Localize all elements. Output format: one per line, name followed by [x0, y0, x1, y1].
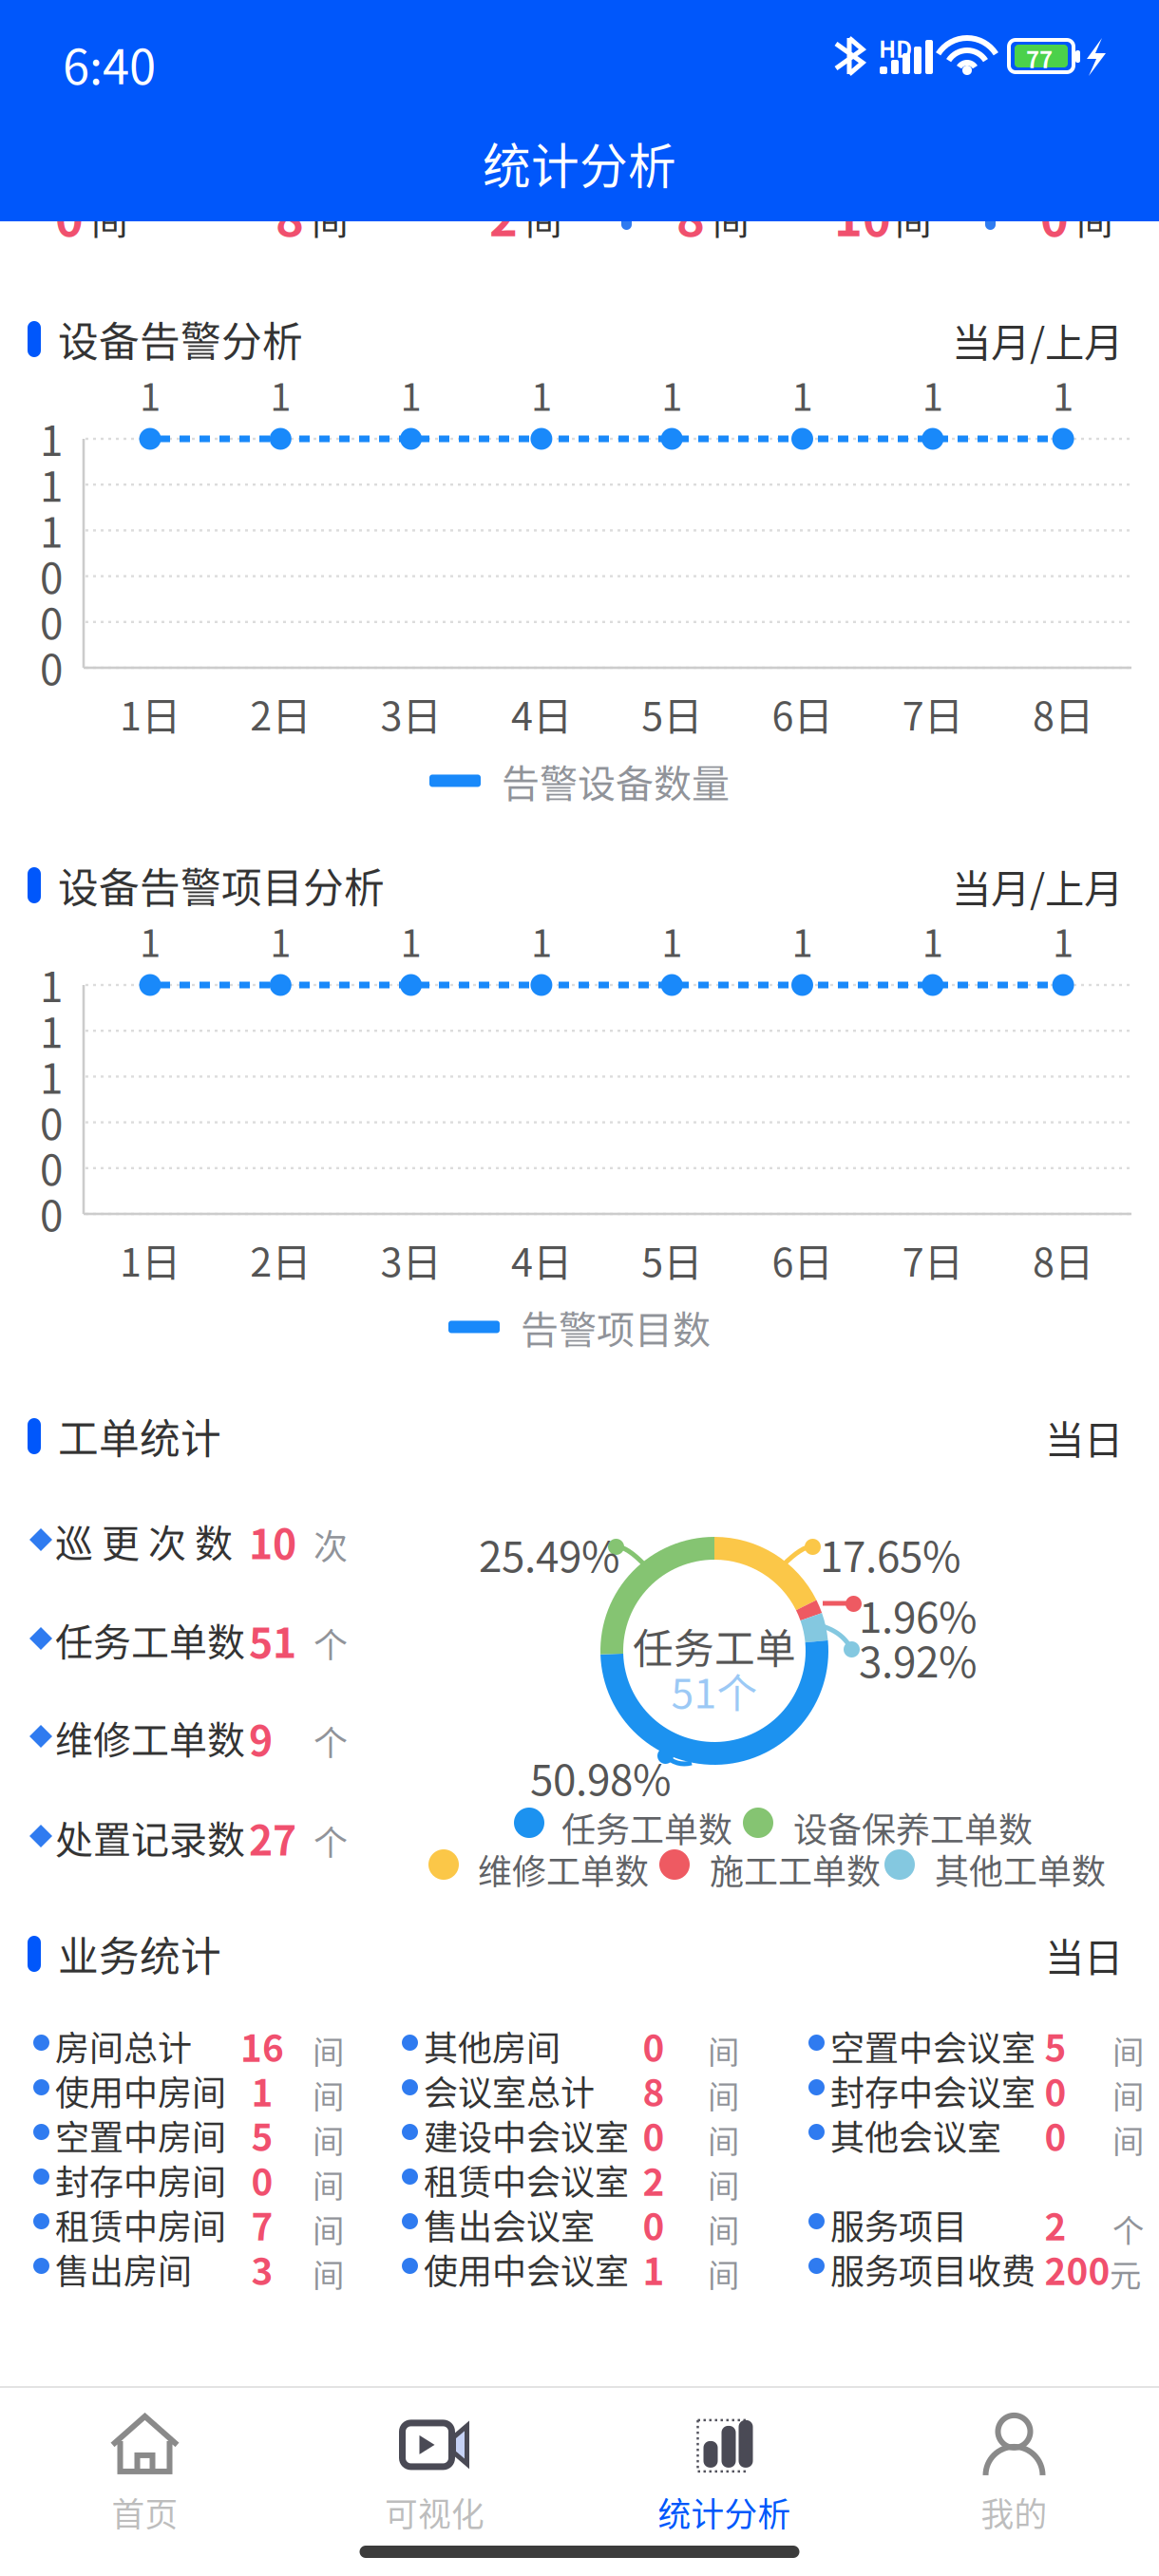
staticText: 间: [712, 192, 750, 245]
staticText: 8日: [1033, 685, 1094, 742]
staticText: 工单统计: [58, 1407, 221, 1465]
staticText: 6日: [772, 685, 833, 742]
staticText: 间: [312, 192, 349, 245]
staticText: 任务工单数: [561, 1803, 732, 1852]
staticText: 服务项目: [830, 2200, 967, 2249]
staticText: 2: [1045, 2198, 1066, 2251]
staticText: 0: [643, 2198, 665, 2251]
staticText: 告警设备数量: [502, 753, 730, 808]
staticText: 0: [643, 2109, 665, 2162]
staticText: 10: [834, 180, 891, 250]
staticText: 5: [251, 2109, 273, 2162]
staticText: 1: [40, 1045, 63, 1106]
staticText: 会议室总计: [424, 2066, 595, 2115]
staticText: 1: [40, 407, 63, 468]
staticText: 0: [643, 2019, 665, 2073]
staticText: 设备保养工单数: [793, 1803, 1033, 1852]
staticText: 间: [708, 2116, 739, 2162]
staticText: 3日: [381, 1231, 441, 1288]
staticText: 售出会议室: [424, 2200, 595, 2249]
staticText: 2日: [250, 685, 311, 742]
staticText: 间: [895, 192, 932, 245]
staticText: 间: [1112, 2116, 1144, 2162]
staticText: 当日: [1045, 1409, 1123, 1466]
staticText: 2日: [250, 1231, 311, 1288]
staticText: 任务工单数: [55, 1612, 245, 1667]
staticText: 10: [249, 1512, 296, 1571]
staticText: 首页: [112, 2489, 178, 2536]
staticText: 4日: [511, 1231, 572, 1288]
staticText: 间: [313, 2250, 344, 2296]
staticText: 1: [40, 999, 63, 1060]
staticText: 17.65%: [820, 1524, 961, 1584]
staticText: 6日: [772, 1231, 833, 1288]
staticText: 1: [1053, 367, 1074, 422]
staticText: 封存中会议室: [830, 2066, 1035, 2115]
staticText: 0: [251, 2153, 273, 2207]
button[interactable]: 首页: [0, 2405, 290, 2548]
staticText: 6:40: [63, 28, 156, 98]
staticText: 0: [40, 545, 63, 605]
staticText: 2: [643, 2153, 665, 2207]
staticText: 1: [270, 913, 291, 968]
staticText: 16: [240, 2019, 284, 2073]
staticText: 3日: [381, 685, 441, 742]
staticText: 8: [275, 180, 304, 250]
staticText: 1: [40, 499, 63, 560]
staticText: 个: [313, 1816, 348, 1866]
staticText: 其他房间: [424, 2021, 560, 2071]
staticText: 8日: [1033, 1231, 1094, 1288]
staticText: 1: [40, 954, 63, 1014]
button[interactable]: 统计分析: [579, 2405, 869, 2548]
staticText: 间: [708, 2250, 739, 2296]
staticText: 1: [270, 367, 291, 422]
staticText: 间: [313, 2206, 344, 2251]
staticText: 2: [489, 180, 518, 250]
staticText: 1: [401, 367, 421, 422]
staticText: 1: [140, 367, 161, 422]
staticText: 租赁中会议室: [424, 2155, 629, 2205]
staticText: 0: [40, 1091, 63, 1152]
staticText: 1: [661, 913, 682, 968]
staticText: 1: [643, 2243, 665, 2296]
staticText: 间: [91, 192, 128, 245]
staticText: 巡 更 次 数: [55, 1513, 233, 1568]
staticText: 1日: [120, 1231, 180, 1288]
staticText: 1: [531, 367, 552, 422]
staticText: 77: [1026, 42, 1053, 75]
staticText: 告警项目数: [521, 1299, 711, 1354]
staticText: 7日: [902, 1231, 963, 1288]
staticText: 1: [140, 913, 161, 968]
staticText: 200: [1045, 2243, 1110, 2296]
staticText: 间: [313, 2072, 344, 2118]
staticText: 0: [40, 591, 63, 651]
staticText: 个: [313, 1716, 348, 1766]
staticText: 1: [401, 913, 421, 968]
staticText: 当月/上月: [952, 312, 1123, 368]
staticText: 8: [676, 180, 705, 250]
staticText: 当日: [1045, 1926, 1123, 1983]
staticText: 可视化: [385, 2489, 484, 2536]
staticText: 间: [313, 2027, 344, 2073]
button[interactable]: 可视化: [290, 2405, 579, 2548]
staticText: 维修工单数: [478, 1845, 649, 1894]
staticText: 处置记录数: [55, 1809, 245, 1864]
staticText: 建设中会议室: [424, 2111, 629, 2160]
staticText: 5: [1045, 2019, 1066, 2073]
staticText: 0: [1040, 180, 1069, 250]
staticText: 空置中会议室: [830, 2021, 1035, 2071]
staticText: 间: [1076, 192, 1113, 245]
staticText: 其他会议室: [830, 2111, 1001, 2160]
staticText: 租赁中房间: [55, 2200, 226, 2249]
staticText: 7: [251, 2198, 273, 2251]
staticText: 1: [661, 367, 682, 422]
staticText: 50.98%: [530, 1747, 672, 1807]
staticText: 0: [55, 180, 84, 250]
staticText: 0: [1045, 2064, 1066, 2117]
staticText: 空置中房间: [55, 2111, 226, 2160]
staticText: 1: [792, 367, 813, 422]
staticText: 业务统计: [58, 1924, 221, 1983]
staticText: 1: [792, 913, 813, 968]
staticText: 1: [40, 453, 63, 514]
button[interactable]: 我的: [869, 2405, 1159, 2548]
